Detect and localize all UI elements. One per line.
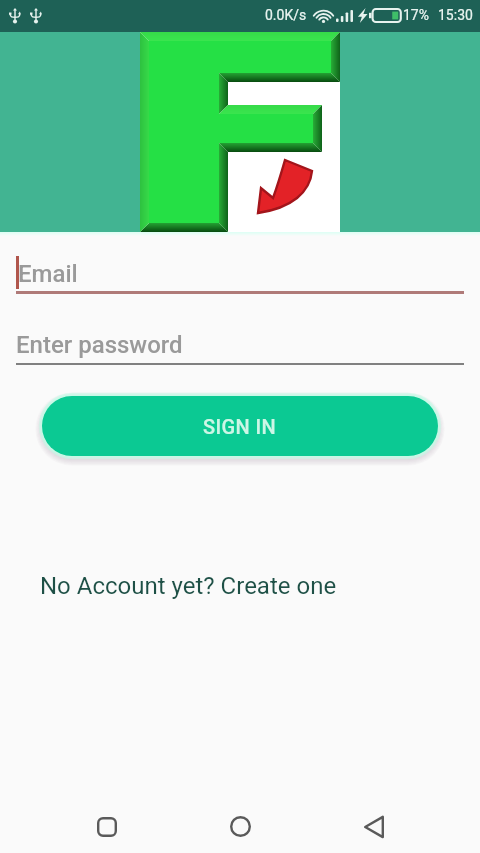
button[interactable]: Home [215,801,265,851]
button[interactable]: Email [0,253,480,294]
button[interactable]: Recent apps [82,802,132,852]
staticText: Email [18,260,78,288]
staticText: SIGN IN [203,415,277,438]
staticText: Enter password [16,331,183,359]
staticText: 0.0K/s [265,7,307,23]
button[interactable]: SIGN IN [42,396,438,456]
staticText: 15:30 [438,7,473,23]
button[interactable]: No Account yet? Create one [32,568,345,604]
staticText: No Account yet? Create one [40,572,337,600]
staticText: 17% [403,7,429,23]
button[interactable]: Back [349,802,399,852]
button[interactable]: Enter password [0,320,480,365]
